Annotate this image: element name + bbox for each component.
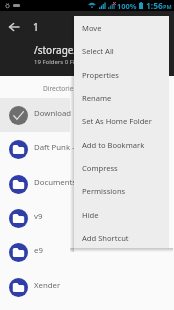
button[interactable]: Properties	[74, 63, 169, 86]
staticText: Add Shortcut	[82, 233, 129, 243]
button[interactable]: e9	[0, 235, 174, 269]
button[interactable]: Download	[0, 98, 174, 132]
staticText: Directories	[43, 84, 77, 93]
staticText: Xender	[34, 280, 61, 291]
staticText: PM	[163, 3, 172, 10]
staticText: Add to Bookmark	[82, 140, 145, 150]
button[interactable]: v9	[0, 201, 174, 235]
button[interactable]: Select All	[74, 39, 169, 62]
staticText: Documents	[34, 177, 77, 188]
staticText: Properties	[82, 70, 119, 80]
button[interactable]: Back	[0, 13, 28, 41]
button[interactable]: Set As Home Folder	[74, 109, 169, 132]
staticText: Daft Punk - Discovery	[34, 142, 112, 153]
staticText: Rename	[82, 93, 112, 103]
button[interactable]: Daft Punk - Discovery	[0, 132, 174, 166]
button[interactable]: Xender	[0, 270, 174, 304]
button[interactable]: Move	[74, 16, 169, 39]
staticText: 100%	[117, 1, 137, 11]
staticText: Move	[82, 23, 102, 33]
staticText: v9	[34, 211, 43, 222]
staticText: Compress	[82, 163, 118, 173]
button[interactable]: Hide	[74, 203, 169, 226]
staticText: Permissions	[82, 186, 126, 196]
staticText: 1:56	[146, 0, 163, 11]
staticText: Set As Home Folder	[82, 116, 152, 126]
staticText: e9	[34, 245, 43, 256]
button[interactable]: Rename	[74, 86, 169, 109]
staticText: 1	[33, 20, 39, 34]
staticText: Hide	[82, 210, 99, 220]
staticText: /storage/sdcard0	[34, 43, 115, 57]
button[interactable]: Compress	[74, 156, 169, 179]
staticText: Select All	[82, 46, 114, 56]
staticText: Download	[34, 108, 72, 119]
staticText: 19 Folders 0 Files	[34, 58, 83, 66]
button[interactable]: Add to Bookmark	[74, 133, 169, 156]
button[interactable]: Documents	[0, 167, 174, 201]
button[interactable]: Permissions	[74, 179, 169, 202]
button[interactable]: Add Shortcut	[74, 226, 169, 249]
